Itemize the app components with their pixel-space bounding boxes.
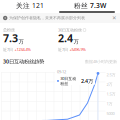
staticText: 粉丝 7.3W (74, 1, 106, 10)
staticText: ✕ (112, 15, 116, 21)
staticText: 数据48小时内更新 (85, 59, 117, 64)
staticText: 近7日 (3, 47, 13, 52)
staticText: 2万 (106, 82, 112, 87)
staticText: 2.5万 (106, 72, 115, 77)
staticText: +1234.4% (14, 47, 30, 52)
staticText: 关注 121 (16, 1, 44, 10)
staticText: 5000 (106, 111, 114, 116)
staticText: 1万 (106, 101, 112, 106)
button[interactable]: 30日互动粉丝 (58, 27, 111, 52)
staticText: 近7日 (58, 47, 68, 52)
staticText: 7.3 (3, 31, 18, 45)
staticText: 2.4万 (81, 77, 93, 84)
staticText: 万 (18, 38, 23, 45)
staticText: 30日互动粉丝 (60, 76, 76, 86)
staticText: 1.5万 (106, 91, 115, 97)
staticText: 09-12 (57, 69, 66, 74)
button[interactable]: 关闭提示 (110, 13, 117, 22)
button[interactable]: 粉丝 7.3W (60, 0, 120, 11)
staticText: 总粉丝 (3, 27, 15, 32)
staticText: +5496.9% (69, 47, 85, 52)
staticText: 30日互动粉丝 (58, 27, 82, 33)
staticText: 为保护创作者隐私，未来不再展示部分列表 (9, 15, 85, 20)
staticText: 万 (73, 38, 78, 45)
staticText: 30日互动粉丝趋势 (3, 58, 44, 65)
button[interactable]: 关注 121 (0, 0, 60, 11)
staticText: 2.4 (58, 31, 73, 45)
button[interactable]: 总粉丝 (3, 27, 56, 52)
